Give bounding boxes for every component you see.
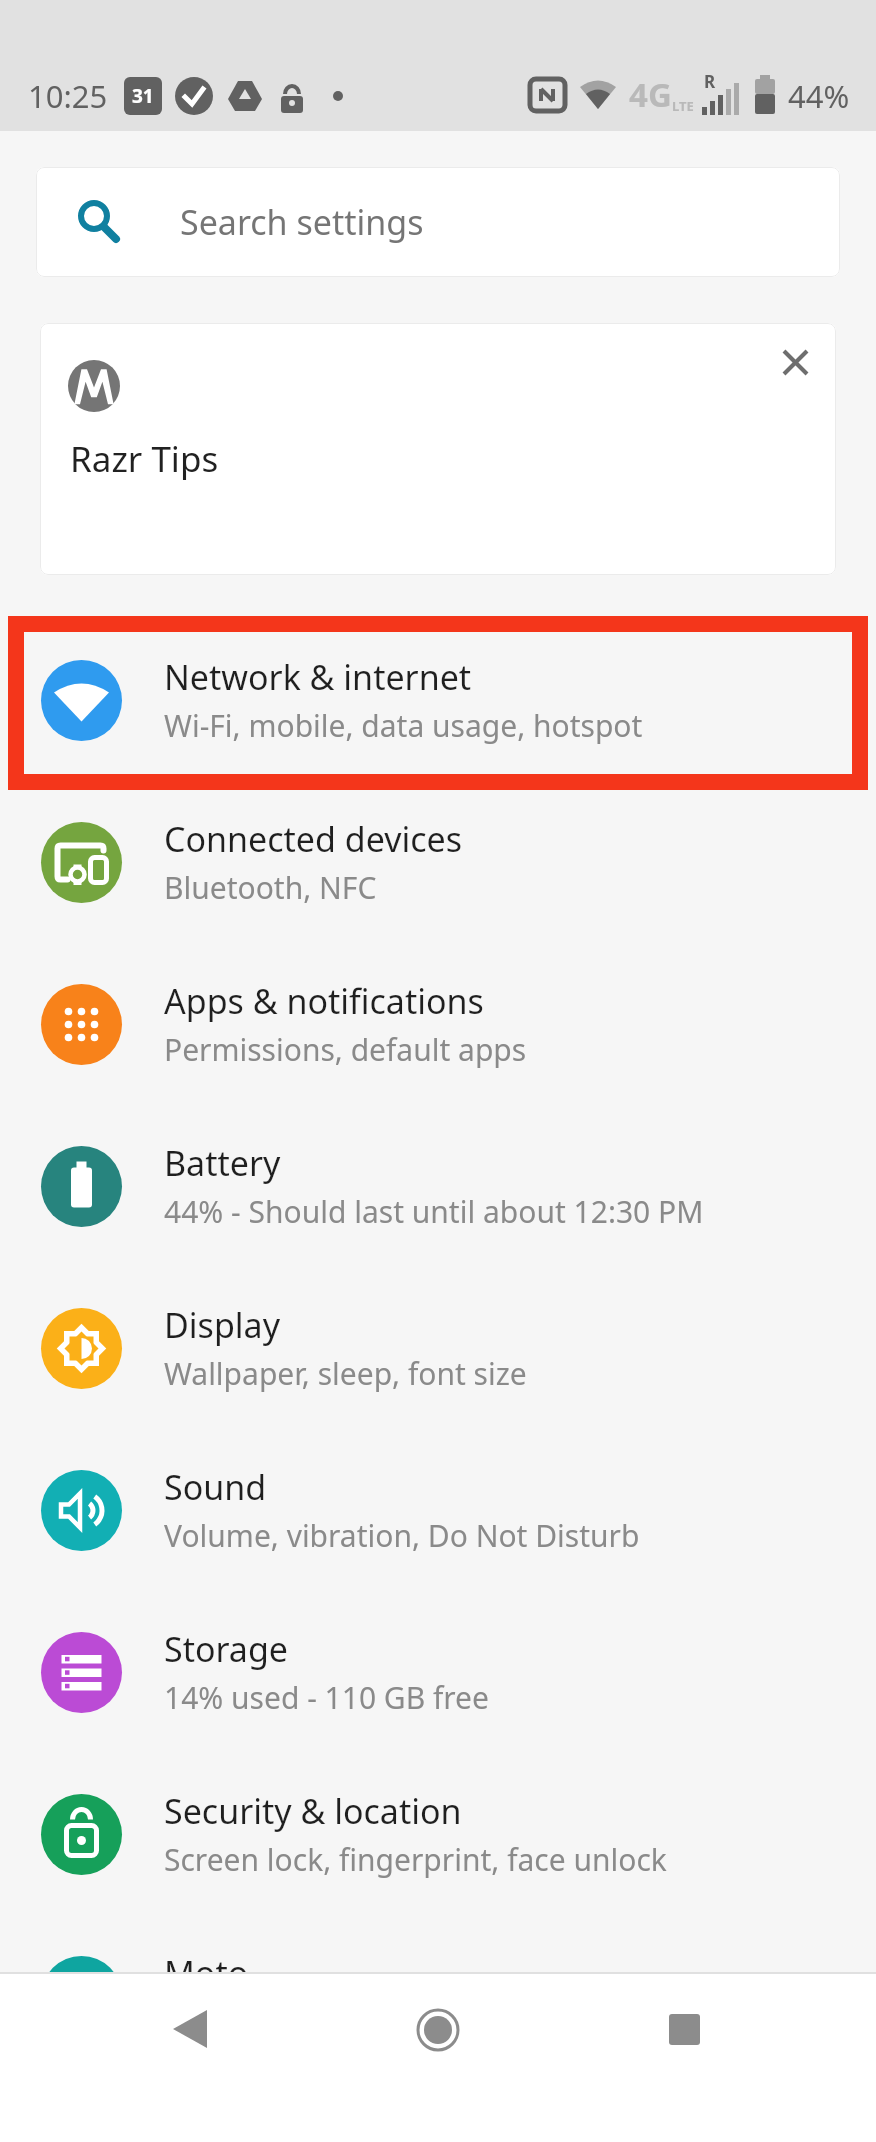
staticText: Moto Actions, Moto Display xyxy=(164,2001,550,2042)
staticText: Razr Tips xyxy=(70,435,219,483)
staticText: Screen lock, fingerprint, face unlock xyxy=(164,1839,667,1880)
staticText: Wallpaper, sleep, font size xyxy=(164,1353,527,1394)
staticText: Bluetooth, NFC xyxy=(164,867,377,908)
button[interactable]: Display xyxy=(0,1267,876,1429)
staticText: 31 xyxy=(132,83,154,109)
button[interactable]: Battery xyxy=(0,1105,876,1267)
staticText: 44% xyxy=(788,75,850,117)
button[interactable]: Network & internet xyxy=(0,619,876,781)
staticText: Sound xyxy=(164,1464,267,1510)
staticText: Storage xyxy=(164,1626,289,1672)
staticText: Security & location xyxy=(164,1788,462,1834)
button[interactable]: Security & location xyxy=(0,1753,876,1915)
staticText: 10:25 xyxy=(28,75,108,117)
staticText: Display xyxy=(164,1302,280,1348)
staticText: Search settings xyxy=(180,199,424,245)
staticText: Network & internet xyxy=(164,654,472,700)
staticText: 44% - Should last until about 12:30 PM xyxy=(164,1191,704,1232)
staticText: Connected devices xyxy=(164,816,463,862)
button[interactable]: Connected devices xyxy=(0,781,876,943)
staticText: 4G xyxy=(629,72,672,117)
button[interactable]: Storage xyxy=(0,1591,876,1753)
staticText: Battery xyxy=(164,1140,281,1186)
button[interactable]: Search settings xyxy=(36,167,840,277)
button[interactable]: Moto xyxy=(0,1915,876,2077)
staticText: 14% used - 110 GB free xyxy=(164,1677,489,1718)
button[interactable]: Razr Tips xyxy=(40,323,836,575)
button[interactable] xyxy=(153,1992,229,2068)
button[interactable] xyxy=(772,339,820,387)
staticText: Volume, vibration, Do Not Disturb xyxy=(164,1515,640,1556)
staticText: Apps & notifications xyxy=(164,978,484,1024)
staticText: Moto xyxy=(164,1950,249,1996)
staticText: Wi-Fi, mobile, data usage, hotspot xyxy=(164,705,643,746)
staticText: Permissions, default apps xyxy=(164,1029,527,1070)
button[interactable]: Sound xyxy=(0,1429,876,1591)
button[interactable] xyxy=(647,1992,723,2068)
button[interactable]: Apps & notifications xyxy=(0,943,876,1105)
staticText: LTE xyxy=(672,97,694,115)
button[interactable] xyxy=(400,1992,476,2068)
staticText: R xyxy=(704,70,716,93)
